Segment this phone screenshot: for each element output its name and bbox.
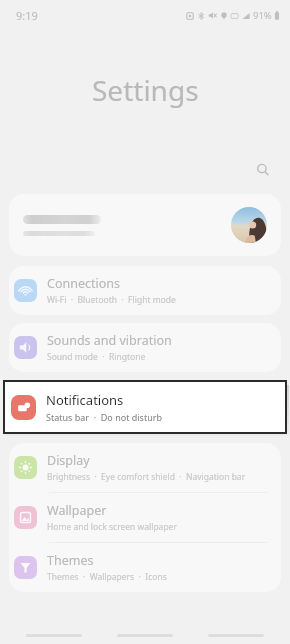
button[interactable]: Display (9, 443, 281, 492)
staticText: Connections (47, 275, 120, 292)
button[interactable]: Sounds and vibration (9, 323, 281, 372)
staticText: Notifications (46, 391, 124, 409)
staticText: Wi-Fi · Bluetooth · Flight mode (47, 294, 176, 306)
staticText: Themes (47, 552, 94, 569)
button[interactable]: Connections (9, 266, 281, 315)
button[interactable]: Wallpaper (9, 493, 281, 542)
staticText: Home and lock screen wallpaper (47, 521, 177, 533)
staticText: Status bar · Do not disturb (46, 411, 162, 423)
button[interactable]: Notifications (5, 382, 285, 432)
staticText: Brightness · Eye comfort shield · Naviga… (47, 471, 246, 483)
staticText: Wallpaper (47, 502, 107, 519)
staticText: 91% (253, 9, 272, 22)
staticText: Settings (92, 71, 199, 109)
staticText: Sounds and vibration (47, 332, 172, 349)
button[interactable] (9, 194, 281, 256)
staticText: Display (47, 452, 90, 469)
staticText: 9:19 (16, 8, 38, 23)
staticText: Themes · Wallpapers · Icons (47, 571, 167, 583)
button[interactable]: Themes (9, 543, 281, 592)
staticText: Sound mode · Ringtone (47, 351, 146, 363)
button[interactable]: Search settings (248, 155, 278, 185)
